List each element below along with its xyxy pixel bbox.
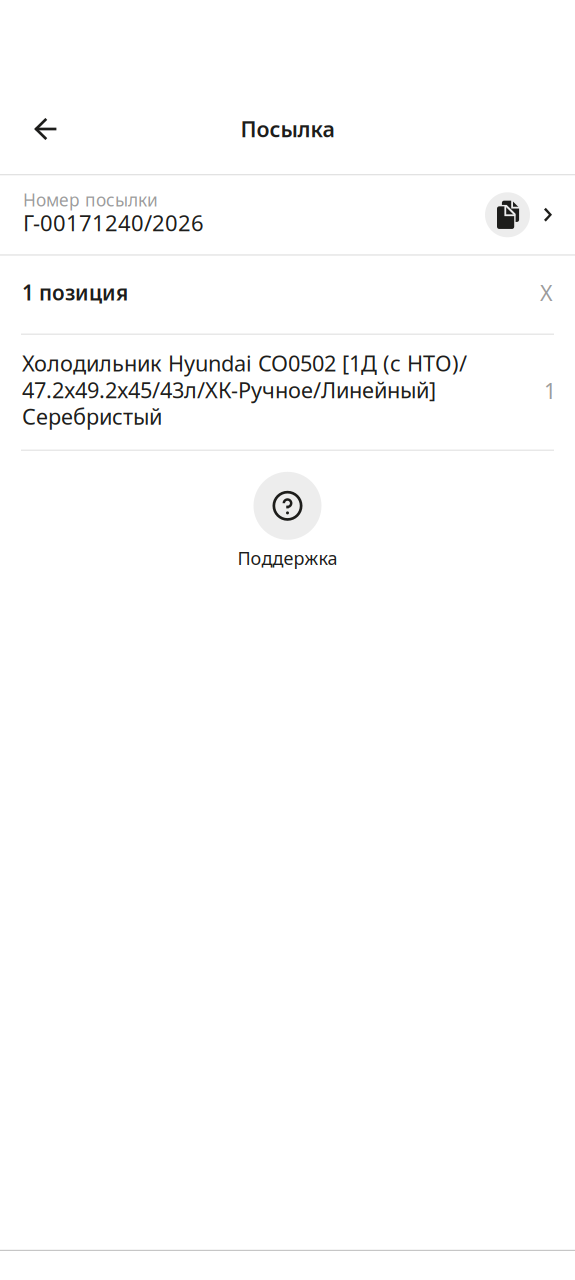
staticText: Холодильник Hyundai CO0502 [1Д (с НТО)/4… (22, 348, 467, 431)
staticText: Посылка (240, 114, 334, 144)
staticText: 1 позиция (22, 278, 128, 307)
button[interactable]: Поддержка (237, 472, 337, 570)
button[interactable]: Номер посылки (0, 175, 575, 254)
staticText: Х (540, 278, 553, 307)
staticText: Номер посылки (23, 188, 158, 212)
staticText: Г-00171240/2026 (23, 208, 204, 238)
staticText: 1 (544, 376, 556, 405)
staticText: Поддержка (237, 546, 337, 570)
button[interactable]: Назад (0, 96, 92, 162)
